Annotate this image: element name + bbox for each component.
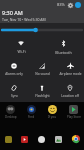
button[interactable]: Location off xyxy=(56,80,84,102)
button[interactable]: App xyxy=(33,136,50,143)
button[interactable]: Airplane mode xyxy=(56,58,84,80)
button[interactable]: Desktop xyxy=(0,105,21,119)
staticText: Airplane mode xyxy=(59,72,82,76)
staticText: 9:30 AM xyxy=(2,9,23,16)
button[interactable]: App xyxy=(16,136,33,143)
button[interactable]: Brightness xyxy=(2,28,82,32)
staticText: Desktop xyxy=(5,115,17,119)
button[interactable]: Wi-Fi xyxy=(0,36,42,58)
button[interactable]: App xyxy=(0,136,16,143)
button[interactable]: No sound xyxy=(28,58,56,80)
button[interactable]: Alarms only xyxy=(0,58,28,80)
button[interactable]: User account xyxy=(75,2,81,8)
staticText: Wi-Fi xyxy=(17,49,26,54)
staticText: Sync xyxy=(11,94,18,98)
staticText: Play Store xyxy=(67,115,81,119)
button[interactable]: App xyxy=(67,135,84,143)
button[interactable]: Play Store xyxy=(63,105,84,119)
staticText: Tue, Nov 10 • Wed 5:30 AM xyxy=(2,17,46,22)
button[interactable]: App xyxy=(50,136,67,143)
staticText: No sound xyxy=(35,72,50,76)
button[interactable]: Sync xyxy=(0,80,28,102)
staticText: Bluetooth xyxy=(55,50,72,55)
button[interactable]: Find xyxy=(21,105,42,119)
staticText: Flashlight xyxy=(35,94,50,98)
button[interactable]: Flashlight xyxy=(28,80,56,102)
staticText: Find xyxy=(28,115,35,119)
staticText: Alarms only xyxy=(5,72,23,76)
staticText: If you xyxy=(48,115,57,119)
staticText: Location off xyxy=(61,94,79,98)
staticText: 83% xyxy=(57,2,65,7)
button[interactable]: If you xyxy=(42,105,63,119)
button[interactable]: Settings xyxy=(67,2,73,8)
button[interactable]: Bluetooth xyxy=(42,36,84,58)
